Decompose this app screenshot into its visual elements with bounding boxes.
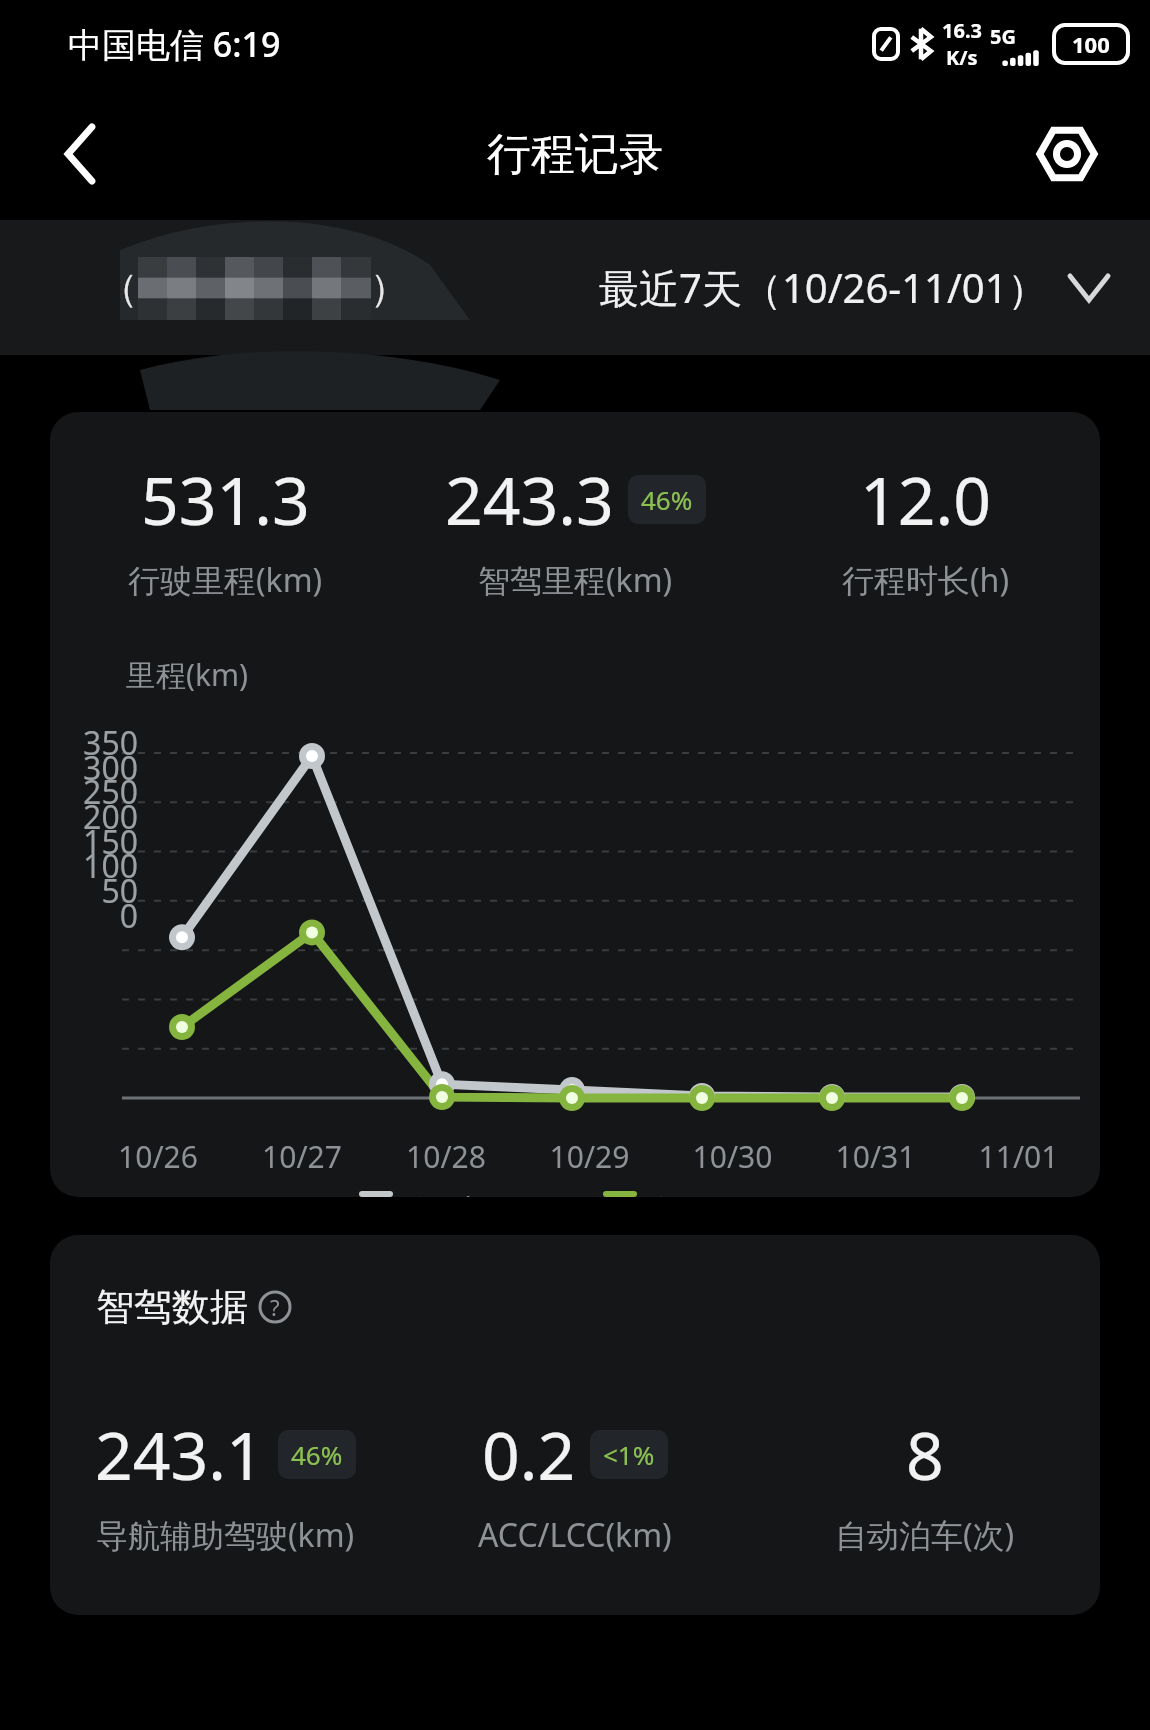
staticText: 10/31 bbox=[804, 1136, 947, 1177]
staticText: 10/26 bbox=[86, 1136, 230, 1177]
staticText: 12.0 bbox=[860, 454, 991, 544]
staticText: 行驶里程 bbox=[411, 1191, 547, 1197]
staticText: 0.2 bbox=[482, 1409, 576, 1499]
staticText: 150 bbox=[50, 820, 138, 864]
staticText: 里程(km) bbox=[126, 654, 249, 695]
staticText: 243.1 bbox=[95, 1409, 264, 1499]
staticText: 100 bbox=[1072, 29, 1110, 59]
staticText: 5G bbox=[990, 23, 1016, 50]
staticText: 0 bbox=[50, 894, 138, 938]
staticText: 46% bbox=[641, 482, 693, 517]
button[interactable]: Settings bbox=[1022, 109, 1112, 199]
staticText: 自动泊车(次) bbox=[835, 1513, 1015, 1557]
staticText: ? bbox=[270, 1292, 280, 1322]
staticText: 行程记录 bbox=[487, 127, 663, 182]
staticText: 16.3 bbox=[942, 17, 982, 44]
button[interactable]: （ bbox=[100, 257, 408, 319]
staticText: 行程时长(h) bbox=[842, 558, 1009, 602]
button[interactable]: Back bbox=[36, 109, 126, 199]
staticText: 531.3 bbox=[141, 454, 310, 544]
staticText: 243.3 bbox=[445, 454, 614, 544]
button[interactable]: Help bbox=[258, 1290, 292, 1324]
staticText: 中国电信 6:19 bbox=[68, 21, 281, 67]
staticText: 50 bbox=[50, 869, 138, 913]
staticText: 导航辅助驾驶(km) bbox=[96, 1513, 355, 1557]
staticText: K/s bbox=[946, 44, 978, 71]
staticText: <1% bbox=[603, 1437, 655, 1472]
staticText: 350 bbox=[50, 721, 138, 765]
staticText: ACC/LCC(km) bbox=[478, 1513, 672, 1557]
staticText: 200 bbox=[50, 795, 138, 839]
staticText: 智驾里程(km) bbox=[478, 558, 673, 602]
staticText: 智驾数据 bbox=[96, 1283, 248, 1331]
staticText: 300 bbox=[50, 746, 138, 790]
staticText: 10/27 bbox=[230, 1136, 374, 1177]
staticText: 8 bbox=[906, 1409, 944, 1499]
staticText: 10/29 bbox=[518, 1136, 661, 1177]
staticText: 行驶里程(km) bbox=[128, 558, 323, 602]
staticText: 100 bbox=[50, 844, 138, 888]
staticText: 11/01 bbox=[947, 1136, 1090, 1177]
button[interactable]: 最近7天（10/26-11/01） bbox=[599, 260, 1108, 315]
staticText: 46% bbox=[291, 1437, 343, 1472]
staticText: ） bbox=[370, 264, 408, 312]
staticText: 250 bbox=[50, 770, 138, 814]
staticText: 10/30 bbox=[661, 1136, 804, 1177]
staticText: 10/28 bbox=[374, 1136, 518, 1177]
staticText: （ bbox=[100, 264, 138, 312]
staticText: 最近7天（10/26-11/01） bbox=[599, 260, 1048, 315]
